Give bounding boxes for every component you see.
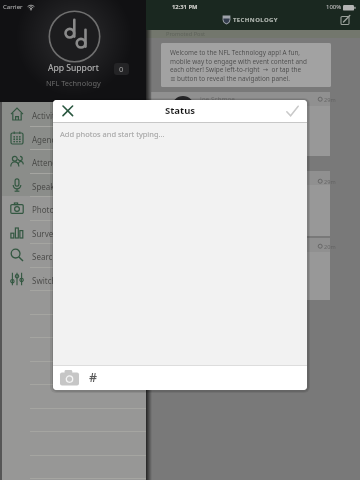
staticText: Welcome to the NFL Technology app! A fun… [170,48,301,57]
button[interactable]: Speakers [0,173,146,197]
button[interactable] [55,100,81,122]
staticText: 29m [324,178,336,185]
staticText: Agenda [32,134,61,145]
staticText: Joe Schmoe [200,95,235,103]
staticText: Photos [32,204,59,215]
button[interactable] [279,100,305,122]
button[interactable]: Search [0,243,146,267]
staticText: 12:31 PM [172,3,198,11]
staticText: Promoted Post [166,30,206,38]
staticText: Switch Event [32,275,80,286]
staticText: Add photos and start typing... [60,129,165,139]
button[interactable]: Agenda [0,126,146,150]
button[interactable] [56,367,82,388]
staticText: Speakers [32,181,67,192]
staticText: App Support [48,62,99,73]
staticText: Attendees [32,157,71,168]
staticText: NFL Technology [46,78,101,88]
button[interactable]: # [82,367,104,388]
button[interactable] [49,11,100,62]
staticText: each other! Swipe left-to-right → or tap… [170,65,302,74]
button[interactable]: Attendees [0,149,146,173]
staticText: Carrier [3,3,23,11]
button[interactable]: Surveys [0,220,146,244]
button[interactable]: Activity Feed [0,102,146,126]
staticText: Search [32,251,58,262]
staticText: TECHNOLOGY [233,16,278,24]
staticText: 0 [119,64,124,74]
staticText: ≡ button to reveal the navigation panel. [170,74,290,83]
button[interactable]: Switch Event [0,267,146,291]
staticText: Activity Feed [32,110,80,121]
button[interactable]: Photos [0,196,146,220]
staticText: 20m [324,243,336,250]
staticText: # [89,369,98,386]
staticText: mobile way to engage with event content … [170,57,307,66]
staticText: Status [165,104,196,117]
staticText: 100% [326,3,342,11]
staticText: Surveys [32,228,61,239]
button[interactable] [337,12,354,28]
staticText: 29m [324,96,336,103]
